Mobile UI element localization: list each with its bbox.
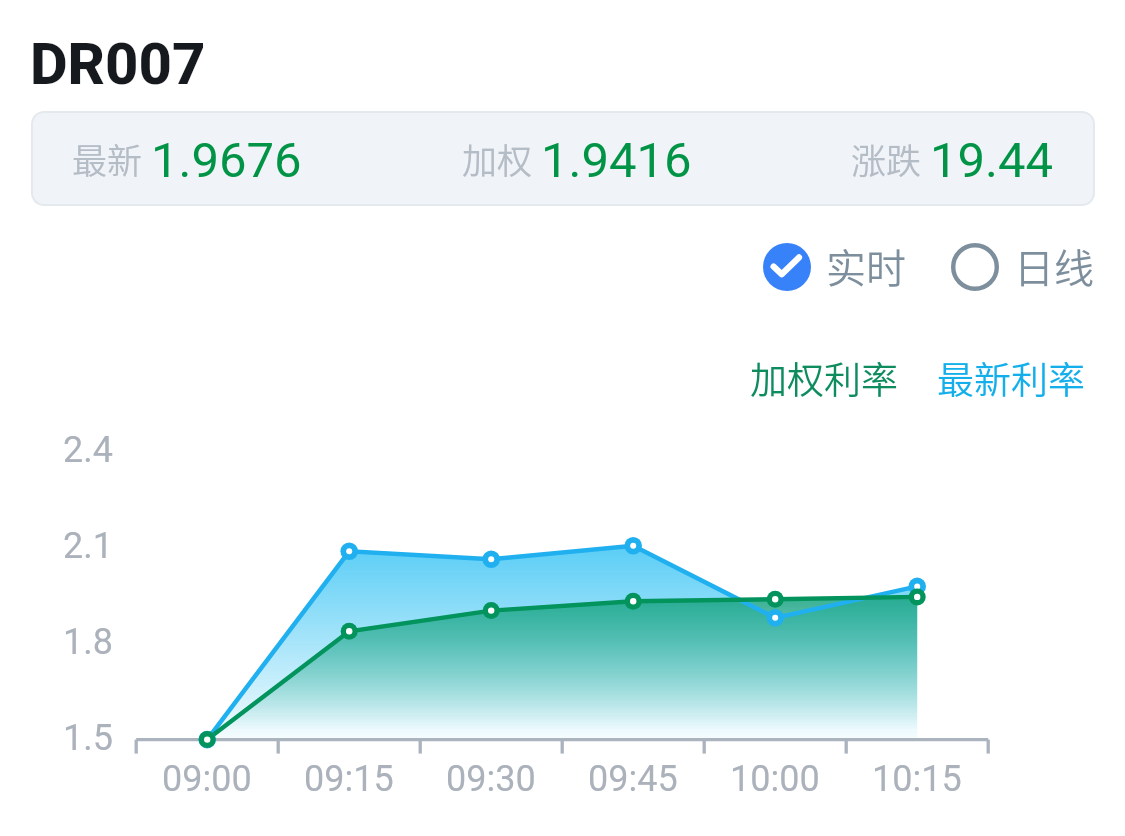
staticText: 09:45 xyxy=(588,758,678,800)
staticText: 最新 xyxy=(72,133,143,184)
staticText: 09:30 xyxy=(446,758,536,800)
button[interactable]: 最新 xyxy=(72,130,302,187)
button[interactable]: Selected option xyxy=(763,240,906,294)
staticText: 10:15 xyxy=(872,758,962,800)
button[interactable]: Unselected option xyxy=(951,240,1094,294)
button[interactable]: 涨跌 xyxy=(851,130,1054,187)
staticText: 1.8 xyxy=(63,621,113,663)
staticText: 涨跌 xyxy=(851,133,922,184)
staticText: 2.4 xyxy=(63,429,113,471)
staticText: 09:15 xyxy=(304,758,394,800)
staticText: 加权 xyxy=(462,133,533,184)
staticText: 09:00 xyxy=(162,758,252,800)
staticText: 2.1 xyxy=(63,525,113,567)
staticText: 实时 xyxy=(826,237,906,291)
staticText: DR007 xyxy=(30,30,206,98)
other: Selected option xyxy=(763,243,811,291)
other: Unselected option xyxy=(951,243,999,291)
staticText: 日线 xyxy=(1014,237,1094,291)
button[interactable]: 最新利率 xyxy=(937,351,1085,397)
staticText: 1.5 xyxy=(63,717,113,759)
staticText: 10:00 xyxy=(730,758,820,800)
staticText: 1.9416 xyxy=(541,132,692,189)
button[interactable]: 最新 xyxy=(31,111,1095,206)
staticText: 1.9676 xyxy=(151,132,302,189)
staticText: 最新利率 xyxy=(937,351,1085,397)
staticText: 19.44 xyxy=(930,132,1054,189)
button[interactable]: 加权利率 xyxy=(750,351,898,397)
staticText: 加权利率 xyxy=(750,351,898,397)
button[interactable]: 加权 xyxy=(462,130,692,187)
